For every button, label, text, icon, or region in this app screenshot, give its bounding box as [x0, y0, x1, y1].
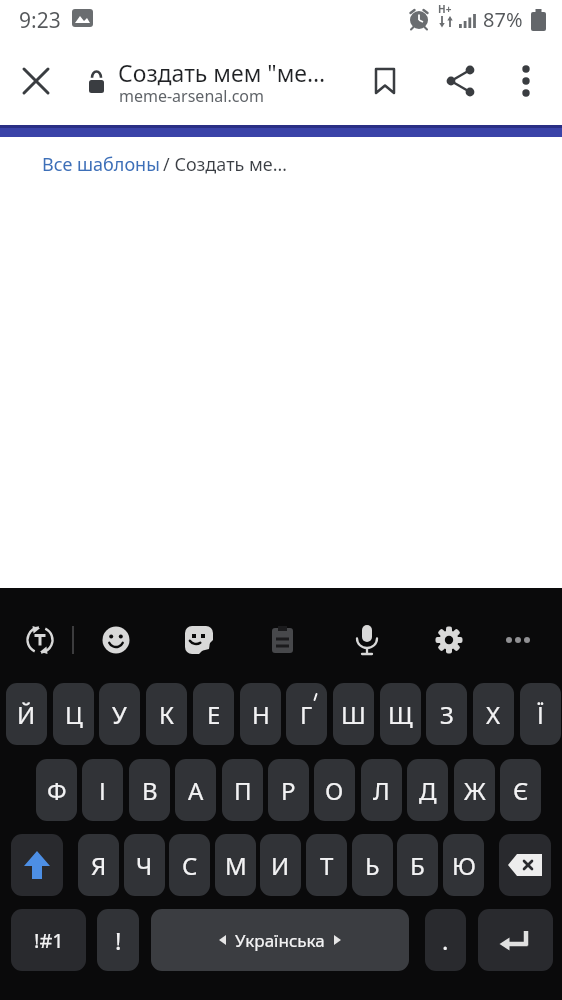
button[interactable]: !	[97, 909, 139, 971]
staticText: / Создать ме…	[163, 152, 287, 177]
button[interactable]: Б	[397, 834, 438, 896]
button[interactable]: .	[425, 909, 466, 971]
staticText: С	[182, 849, 198, 882]
staticText: Д	[419, 774, 437, 807]
staticText: 9:23	[19, 6, 61, 35]
staticText: Ц	[65, 698, 83, 731]
staticText: Н	[252, 698, 270, 731]
button[interactable]: Є	[500, 759, 541, 821]
button[interactable]: Ю	[443, 834, 484, 896]
staticText: Т	[320, 849, 334, 882]
button[interactable]: М	[215, 834, 256, 896]
staticText: Г	[300, 698, 313, 731]
button[interactable]: Г	[286, 683, 327, 745]
staticText: Р	[281, 774, 296, 807]
button[interactable]: Я	[78, 834, 119, 896]
staticText: Є	[513, 774, 529, 807]
button[interactable]	[373, 66, 397, 96]
staticText: В	[142, 774, 158, 807]
button[interactable]: П	[222, 759, 263, 821]
staticText: Е	[207, 698, 221, 731]
button[interactable]	[354, 624, 380, 656]
staticText: У	[112, 698, 127, 731]
button[interactable]: Н	[240, 683, 281, 745]
staticText: П	[234, 774, 252, 807]
button[interactable]	[102, 626, 130, 654]
staticText: Ї	[537, 698, 544, 731]
button[interactable]	[25, 625, 55, 655]
staticText: Все шаблоны	[42, 152, 160, 177]
staticText: 87%	[483, 6, 523, 33]
button[interactable]: Д	[407, 759, 448, 821]
button[interactable]	[184, 625, 214, 655]
button[interactable]: Ш	[333, 683, 374, 745]
button[interactable]: А	[175, 759, 216, 821]
button[interactable]: З	[426, 683, 467, 745]
staticText: Б	[410, 849, 425, 882]
staticText: З	[440, 698, 454, 731]
button[interactable]	[504, 634, 532, 646]
staticText: Л	[373, 774, 390, 807]
button[interactable]: О	[314, 759, 355, 821]
button[interactable]: Ц	[53, 683, 94, 745]
button[interactable]: Й	[6, 683, 47, 745]
button[interactable]: Ї	[520, 683, 561, 745]
button[interactable]: Ч	[124, 834, 165, 896]
button[interactable]: С	[169, 834, 210, 896]
button[interactable]: Ф	[36, 759, 77, 821]
staticText: Ж	[464, 774, 486, 807]
button[interactable]	[11, 834, 63, 896]
staticText: Создать мем "ме…	[118, 57, 326, 88]
button[interactable]	[22, 67, 50, 95]
staticText: .	[442, 924, 449, 957]
button[interactable]	[478, 909, 553, 971]
button[interactable]: Р	[268, 759, 309, 821]
staticText: Українська	[235, 929, 325, 952]
staticText: К	[159, 698, 174, 731]
button[interactable]: Ь	[352, 834, 393, 896]
staticText: Ь	[365, 849, 380, 882]
button[interactable]: І	[82, 759, 123, 821]
staticText: Ф	[47, 774, 67, 807]
button[interactable]: Все шаблоны	[42, 152, 160, 177]
staticText: !	[115, 924, 122, 957]
staticText: Ш	[341, 698, 366, 731]
button[interactable]: К	[146, 683, 187, 745]
button[interactable]: Щ	[380, 683, 421, 745]
button[interactable]	[516, 62, 536, 102]
button[interactable]: Ж	[454, 759, 495, 821]
staticText: И	[271, 849, 290, 882]
staticText: !#1	[34, 927, 64, 954]
staticText: М	[225, 849, 247, 882]
staticText: О	[325, 774, 344, 807]
staticText: H+	[438, 2, 452, 16]
staticText: Й	[17, 698, 36, 731]
button[interactable]	[446, 65, 476, 97]
button[interactable]: !#1	[11, 909, 86, 971]
button[interactable]: И	[260, 834, 301, 896]
button[interactable]	[435, 626, 463, 654]
button[interactable]: У	[99, 683, 140, 745]
button[interactable]: Українська	[151, 909, 409, 971]
staticText: Я	[91, 849, 107, 882]
staticText: Ю	[452, 849, 476, 882]
button[interactable]: В	[129, 759, 170, 821]
staticText: Щ	[388, 698, 413, 731]
button[interactable]: Е	[193, 683, 234, 745]
staticText: І	[99, 774, 106, 807]
staticText: Ч	[136, 849, 153, 882]
staticText: А	[188, 774, 204, 807]
button[interactable]	[499, 834, 551, 896]
button[interactable]: Л	[361, 759, 402, 821]
staticText: meme-arsenal.com	[119, 85, 264, 107]
button[interactable]: Т	[306, 834, 347, 896]
button[interactable]: Х	[473, 683, 514, 745]
staticText: Х	[486, 698, 501, 731]
